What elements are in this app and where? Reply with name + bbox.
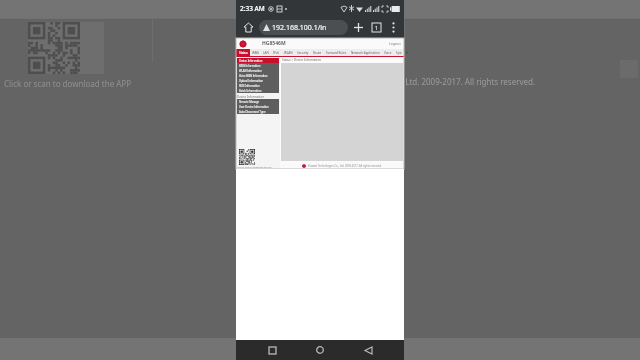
button[interactable]: Auto Disconnect Type — [237, 109, 279, 114]
button[interactable]: WLAN Information — [237, 68, 279, 73]
button[interactable]: Status — [236, 49, 250, 56]
button[interactable]: Voice — [384, 49, 392, 56]
staticText: LAN — [263, 51, 269, 55]
button[interactable]: Security — [297, 49, 309, 56]
staticText: Click or scan to download the APP — [237, 166, 272, 169]
staticText: System Tools — [396, 51, 402, 55]
button[interactable]: Optical Information — [237, 78, 279, 83]
staticText: HG8546M — [262, 40, 286, 47]
button[interactable]: User Device Information — [237, 104, 279, 109]
staticText: Auto Disconnect Type — [239, 110, 266, 114]
staticText: Network Application — [351, 51, 380, 55]
staticText: User Device Information — [239, 105, 269, 109]
button[interactable]: Home — [239, 18, 257, 36]
button[interactable]: Home — [308, 340, 332, 360]
button[interactable]: Network Application — [351, 49, 380, 56]
button[interactable]: LAN — [263, 49, 269, 56]
staticText: 1 — [375, 24, 379, 31]
button[interactable]: Tabs — [367, 18, 385, 36]
staticText: WAN — [252, 51, 259, 55]
button[interactable]: Recent apps — [260, 340, 284, 360]
staticText: Batch Information — [239, 89, 262, 93]
button[interactable]: More options — [385, 19, 401, 35]
staticText: Logout — [389, 41, 401, 46]
button[interactable]: IPv6 — [273, 49, 280, 56]
button[interactable]: Route — [313, 49, 322, 56]
button[interactable]: WLAN — [284, 49, 293, 56]
staticText: Voice — [384, 51, 392, 55]
button[interactable]: New tab — [349, 18, 367, 36]
staticText: WLAN Information — [239, 69, 262, 73]
staticText: Huawei Technologies Co., Ltd. 2009-2017.… — [308, 164, 382, 168]
button[interactable]: Batch Information — [237, 88, 279, 93]
button[interactable]: RSSI Information — [237, 83, 279, 88]
button[interactable]: Remote Manage — [237, 99, 279, 104]
button[interactable]: WAN Information — [237, 63, 279, 68]
staticText: Status > Device Information — [282, 58, 322, 62]
staticText: Remote Manage — [239, 100, 260, 104]
staticText: Status — [239, 51, 248, 55]
staticText: Forward Rules — [326, 51, 347, 55]
button[interactable]: System Tools — [396, 49, 402, 56]
staticText: WAN Information — [239, 64, 261, 68]
staticText: Optical Information — [239, 79, 263, 83]
staticText: Device Information — [239, 59, 263, 63]
staticText: Device Information — [237, 95, 265, 99]
staticText: 2:33 AM — [240, 4, 265, 13]
staticText: Route — [313, 51, 322, 55]
staticText: IPv6 — [273, 51, 280, 55]
staticText: Security — [297, 51, 309, 55]
button[interactable]: Back — [356, 340, 380, 360]
button[interactable]: WAN — [252, 49, 259, 56]
staticText: RSSI Information — [239, 84, 260, 88]
staticText: Voice WAN Information — [239, 74, 268, 78]
staticText: 192.168.100.1/in — [272, 23, 327, 33]
button[interactable]: Voice WAN Information — [237, 73, 279, 78]
button[interactable]: Forward Rules — [326, 49, 347, 56]
button[interactable]: Device Information — [237, 58, 279, 63]
staticText: Click or scan to download the APP — [4, 78, 132, 89]
button[interactable]: 192.168.100.1/in — [259, 20, 348, 35]
staticText: , Ltd. 2009-2017. All rights reserved. — [401, 76, 536, 87]
staticText: WLAN — [284, 51, 293, 55]
